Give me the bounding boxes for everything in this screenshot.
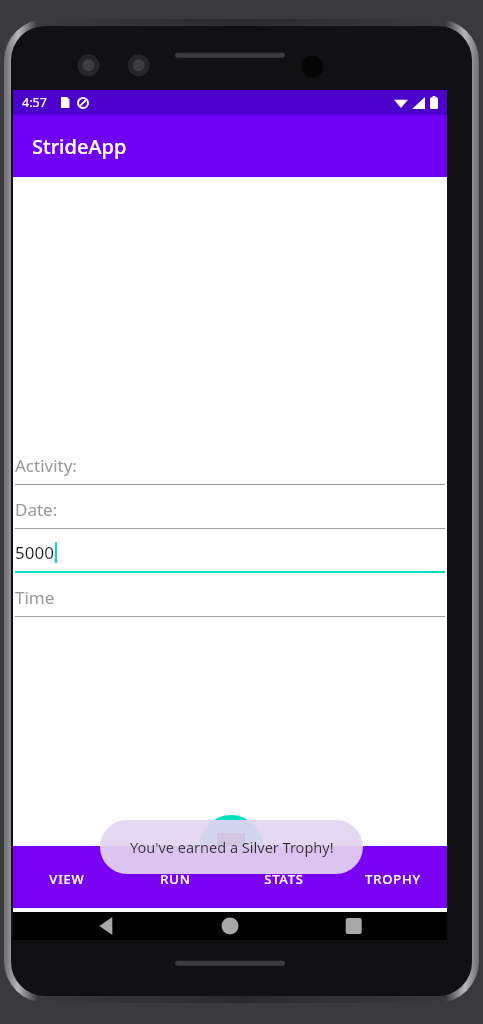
button[interactable]: Stop bbox=[199, 815, 263, 879]
button[interactable]: Time bbox=[13, 573, 447, 617]
staticText: STATS bbox=[264, 870, 304, 888]
staticText: 5000 bbox=[15, 541, 54, 564]
button[interactable]: STATS bbox=[229, 846, 338, 912]
staticText: You've earned a Silver Trophy! bbox=[130, 837, 334, 857]
staticText: Activity: bbox=[15, 454, 77, 477]
staticText: Date: bbox=[15, 498, 58, 521]
button[interactable]: TROPHY bbox=[338, 846, 447, 912]
button[interactable]: Activity: bbox=[13, 441, 447, 485]
button[interactable]: 5000 bbox=[13, 529, 447, 573]
button[interactable]: RUN bbox=[121, 846, 229, 912]
staticText: Time bbox=[15, 586, 55, 609]
staticText: TROPHY bbox=[365, 870, 421, 888]
staticText: StrideApp bbox=[32, 133, 127, 160]
staticText: RUN bbox=[160, 870, 191, 888]
button[interactable]: VIEW bbox=[13, 846, 121, 912]
staticText: 4:57 bbox=[22, 94, 47, 111]
button[interactable]: Date: bbox=[13, 485, 447, 529]
staticText: VIEW bbox=[49, 870, 85, 888]
